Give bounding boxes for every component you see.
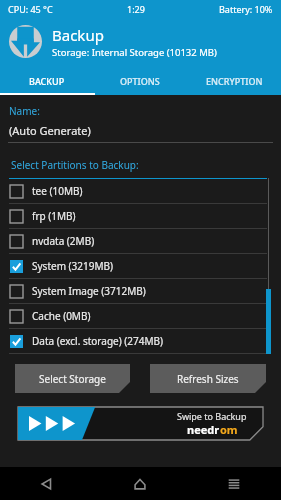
staticText: ENCRYPTION xyxy=(206,75,263,87)
staticText: Battery: 10% xyxy=(219,3,273,15)
button[interactable]: Refresh Sizes xyxy=(150,364,266,393)
button[interactable]: tee (10MB) xyxy=(0,179,281,204)
staticText: frp (1MB) xyxy=(32,209,76,223)
button[interactable]: ENCRYPTION xyxy=(187,66,281,95)
button[interactable]: Home xyxy=(93,467,187,500)
staticText: BACKUP xyxy=(29,75,65,87)
staticText: Name: xyxy=(9,104,40,118)
staticText: Select Storage xyxy=(39,372,106,386)
button[interactable]: Data (excl. storage) (274MB) xyxy=(0,329,281,354)
button[interactable]: System (3219MB) xyxy=(0,254,281,279)
staticText: nvdata (2MB) xyxy=(32,234,95,248)
staticText: System (3219MB) xyxy=(32,259,114,273)
button[interactable]: BACKUP xyxy=(0,66,93,95)
staticText: (Auto Generate) xyxy=(9,123,91,138)
button[interactable]: Select Storage xyxy=(15,364,130,393)
staticText: System Image (3712MB) xyxy=(32,284,146,298)
button[interactable]: nvdata (2MB) xyxy=(0,229,281,254)
button[interactable]: OPTIONS xyxy=(93,66,187,95)
button[interactable]: frp (1MB) xyxy=(0,204,281,229)
staticText: Swipe to Backup xyxy=(177,410,247,422)
staticText: Cache (0MB) xyxy=(32,309,91,323)
staticText: tee (10MB) xyxy=(32,184,83,198)
button[interactable]: Recents xyxy=(187,467,281,500)
button[interactable]: Swipe to Backup xyxy=(18,407,263,440)
staticText: Refresh Sizes xyxy=(177,372,239,386)
button[interactable]: Cache (0MB) xyxy=(0,304,281,329)
button[interactable]: System Image (3712MB) xyxy=(0,279,281,304)
staticText: 1:29 xyxy=(127,3,145,15)
staticText: CPU: 45 °C xyxy=(8,3,53,15)
staticText: Select Partitions to Backup: xyxy=(11,158,139,172)
staticText: OPTIONS xyxy=(120,75,160,87)
staticText: Data (excl. storage) (274MB) xyxy=(32,334,164,348)
staticText: om xyxy=(220,422,238,437)
staticText: Storage: Internal Storage (10132 MB) xyxy=(52,46,217,59)
staticText: Backup xyxy=(52,25,104,45)
staticText: needr xyxy=(187,422,220,437)
button[interactable]: Back xyxy=(0,467,93,500)
